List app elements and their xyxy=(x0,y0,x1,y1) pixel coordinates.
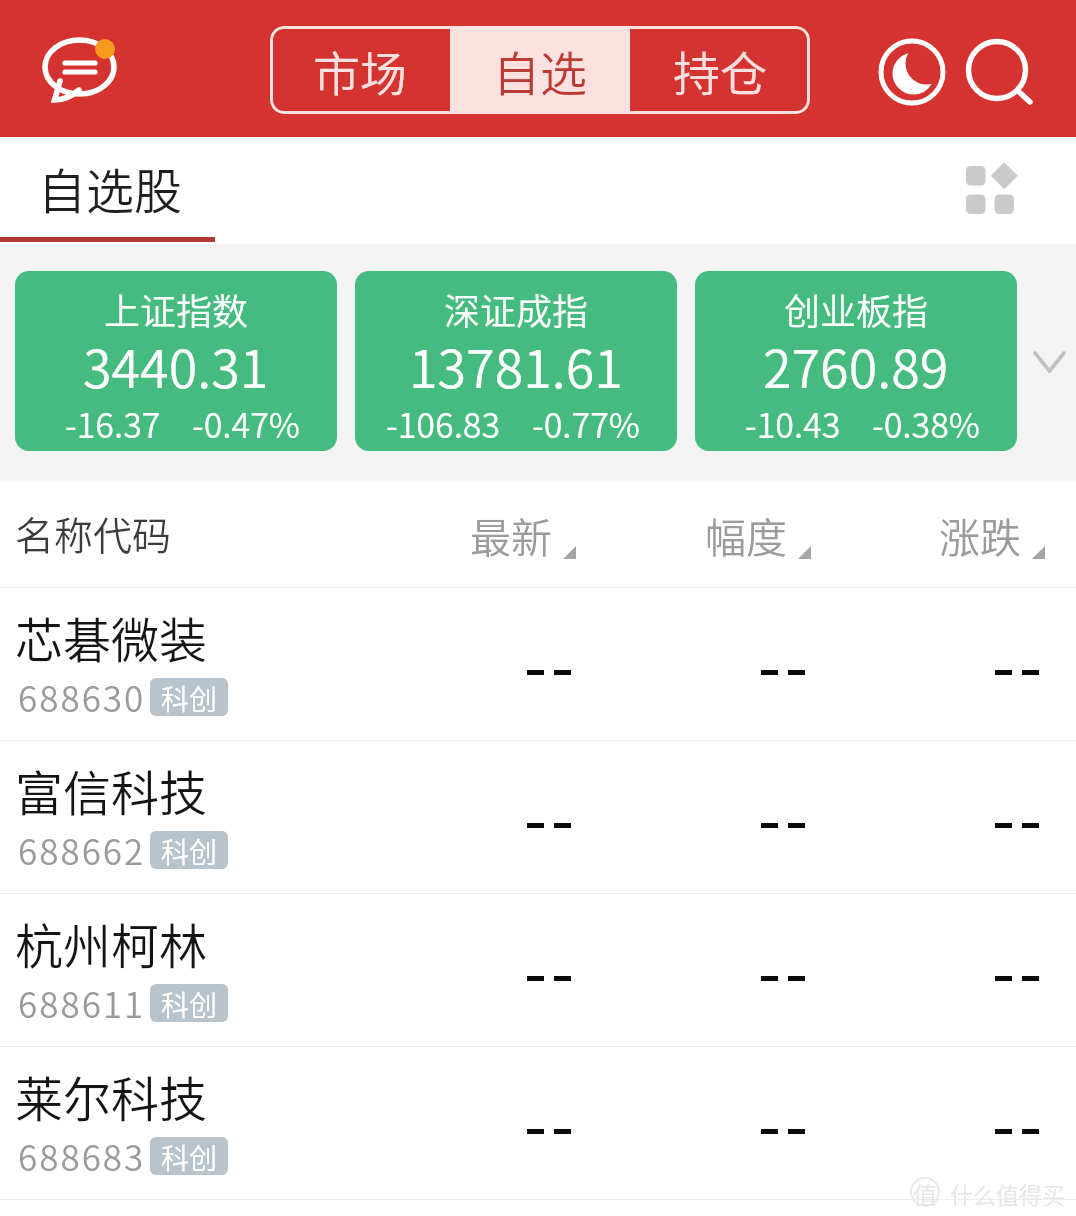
staticText: 幅度 xyxy=(705,505,787,564)
staticText: -10.43 xyxy=(745,399,841,448)
button[interactable]: 自选 xyxy=(450,26,630,114)
button[interactable]: 芯碁微装 xyxy=(0,588,1076,741)
button[interactable]: 涨跌 xyxy=(932,481,1052,588)
staticText: 名称代码 xyxy=(15,505,172,561)
staticText: -106.83 xyxy=(386,399,501,448)
button[interactable]: 市场 xyxy=(270,26,450,114)
staticText: 科创 xyxy=(161,1137,218,1175)
staticText: 富信科技 xyxy=(15,755,208,825)
staticText: 涨跌 xyxy=(939,505,1021,564)
button[interactable]: Grid view xyxy=(966,166,1014,214)
button[interactable]: 上证指数 xyxy=(15,271,337,451)
staticText: 2760.89 xyxy=(763,328,949,403)
button[interactable]: Messages xyxy=(32,26,128,122)
button[interactable]: 持仓 xyxy=(630,26,810,114)
staticText: 什么值得买 xyxy=(950,1177,1065,1210)
staticText: 科创 xyxy=(161,984,218,1022)
staticText: 上证指数 xyxy=(104,283,249,335)
staticText: 莱尔科技 xyxy=(15,1061,208,1131)
staticText: -0.38% xyxy=(872,399,980,448)
staticText: 688630 xyxy=(18,671,146,722)
staticText: 市场 xyxy=(313,36,407,104)
button[interactable]: 创业板指 xyxy=(695,271,1017,451)
staticText: 688683 xyxy=(18,1130,146,1181)
button[interactable]: 杭州柯林 xyxy=(0,894,1076,1047)
button[interactable]: 莱尔科技 xyxy=(0,1047,1076,1200)
button[interactable]: Expand indices xyxy=(1030,346,1070,386)
staticText: 688611 xyxy=(18,977,146,1028)
button[interactable]: 最新 xyxy=(463,481,583,588)
button[interactable]: 富信科技 xyxy=(0,741,1076,894)
button[interactable]: Search xyxy=(960,33,1036,109)
button[interactable]: 深证成指 xyxy=(355,271,677,451)
staticText: 芯碁微装 xyxy=(15,602,208,672)
staticText: -0.47% xyxy=(192,399,300,448)
staticText: 13781.61 xyxy=(409,328,623,403)
staticText: 最新 xyxy=(470,505,552,564)
staticText: 自选 xyxy=(493,36,587,104)
staticText: 科创 xyxy=(161,831,218,869)
staticText: 自选股 xyxy=(38,153,183,223)
staticText: -16.37 xyxy=(65,399,161,448)
staticText: 值 xyxy=(913,1176,937,1206)
staticText: 杭州柯林 xyxy=(15,908,208,978)
staticText: 深证成指 xyxy=(444,283,589,335)
staticText: 688662 xyxy=(18,824,146,875)
staticText: 创业板指 xyxy=(784,283,929,335)
staticText: 持仓 xyxy=(673,36,767,104)
staticText: 3440.31 xyxy=(83,328,269,403)
button[interactable]: Night mode xyxy=(876,36,948,108)
staticText: 科创 xyxy=(161,678,218,716)
staticText: -0.77% xyxy=(532,399,640,448)
button[interactable]: 幅度 xyxy=(698,481,818,588)
